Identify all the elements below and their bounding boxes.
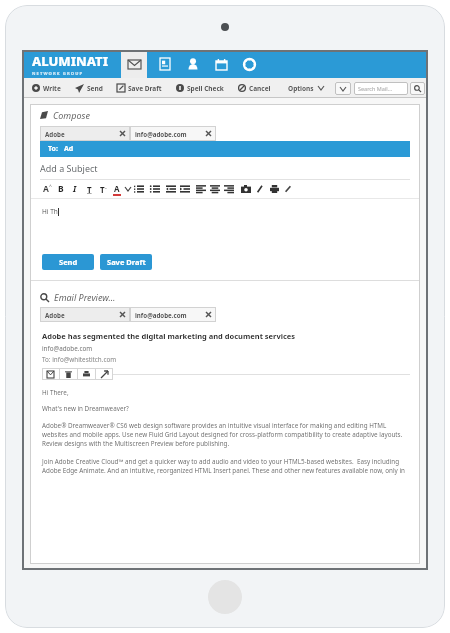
staticText: Hi Th [42, 207, 58, 216]
button[interactable]: Font size [40, 181, 54, 197]
button[interactable] [206, 312, 211, 317]
button[interactable]: Mail [121, 50, 147, 78]
button[interactable]: Send [68, 78, 110, 98]
staticText: A [43, 183, 49, 195]
staticText: B [58, 183, 64, 195]
staticText: Adobe has segmented the digital marketin… [42, 331, 296, 341]
button[interactable]: Adobe [40, 126, 130, 141]
staticText: Add a Subject [40, 162, 98, 174]
button[interactable]: Numbered list [132, 181, 146, 197]
staticText: Search Mail... [358, 85, 393, 92]
button[interactable]: Cancel [231, 78, 278, 98]
button[interactable]: Print [267, 181, 281, 197]
button[interactable]: Search [410, 82, 425, 95]
staticText: Save Draft [107, 257, 146, 267]
button[interactable]: Settings [239, 54, 259, 74]
staticText: To: [48, 144, 58, 154]
button[interactable] [206, 131, 211, 136]
button[interactable]: info@adobe.com [130, 307, 216, 322]
button[interactable]: Calendar [211, 54, 231, 74]
button[interactable]: Filter [335, 82, 351, 95]
staticText: Hi There, [42, 388, 69, 397]
button[interactable]: Underline [82, 181, 96, 197]
staticText: Spell Check [187, 84, 224, 93]
staticText: T [100, 184, 105, 195]
staticText: To: info@whitestitch.com [42, 355, 117, 364]
staticText: Adobe® Dreamweaver® CS6 web design softw… [42, 421, 410, 448]
staticText: Adobe [45, 311, 65, 319]
button[interactable]: Adobe [40, 307, 130, 322]
button[interactable]: Text style [96, 181, 110, 197]
button[interactable]: Contacts card [155, 54, 175, 74]
button[interactable]: Text color [110, 181, 124, 197]
staticText: I [73, 183, 77, 195]
staticText: info@adobe.com [135, 311, 187, 319]
staticText: Email Preview... [54, 291, 116, 303]
button[interactable]: Spell Check [169, 78, 231, 98]
button[interactable]: Attach [253, 181, 267, 197]
button[interactable]: Increase indent [178, 181, 192, 197]
button[interactable]: Bold [54, 181, 68, 197]
staticText: T [87, 184, 92, 195]
button[interactable]: Align center [208, 181, 222, 197]
staticText: info@adobe.com [135, 130, 187, 138]
staticText: N E T W O R K G R O U P [32, 71, 83, 77]
button[interactable]: Expand [96, 368, 113, 380]
button[interactable] [120, 312, 125, 317]
button[interactable]: Italic [68, 181, 82, 197]
staticText: Cancel [249, 84, 271, 93]
button[interactable]: Align left [194, 181, 208, 197]
button[interactable]: Decrease indent [164, 181, 178, 197]
button[interactable]: Bulleted list [148, 181, 162, 197]
staticText: Ad [64, 144, 74, 154]
button[interactable]: People [183, 54, 203, 74]
staticText: ALUMINATI [32, 52, 109, 70]
staticText: Send [59, 257, 78, 267]
staticText: What's new in Dreamweaver? [42, 404, 129, 413]
staticText: Adobe [45, 130, 65, 138]
staticText: Join Adobe Creative Cloud™ and get a qui… [42, 457, 410, 475]
button[interactable]: Color picker [124, 182, 132, 196]
staticText: info@adobe.com [42, 344, 93, 353]
button[interactable]: Search Mail... [354, 82, 408, 95]
staticText: Send [87, 84, 103, 93]
button[interactable]: Write [25, 78, 68, 98]
button[interactable]: To: [40, 141, 410, 157]
button[interactable]: Reply [42, 368, 59, 380]
button[interactable]: Insert image [239, 181, 253, 197]
staticText: Compose [53, 109, 90, 121]
button[interactable]: Save Draft [100, 254, 152, 270]
button[interactable]: Save Draft [110, 78, 169, 98]
staticText: Options [288, 84, 314, 93]
button[interactable]: Print [78, 368, 95, 380]
button[interactable]: info@adobe.com [130, 126, 216, 141]
staticText: Save Draft [128, 84, 162, 93]
staticText: ^ [49, 183, 52, 190]
button[interactable]: Delete [60, 368, 77, 380]
button[interactable]: Send [42, 254, 94, 270]
staticText: Write [43, 84, 61, 93]
staticText: · [105, 184, 107, 194]
button[interactable]: Options [278, 78, 331, 98]
staticText: A [114, 183, 120, 194]
button[interactable]: Link [281, 181, 295, 197]
button[interactable]: Align right [222, 181, 236, 197]
button[interactable] [120, 131, 125, 136]
